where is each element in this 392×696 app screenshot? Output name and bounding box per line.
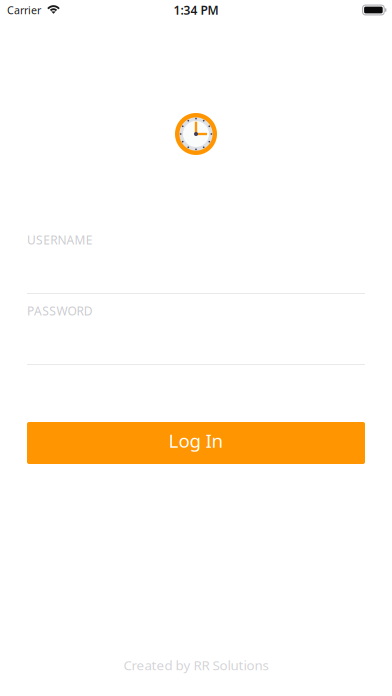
staticText: Created by RR Solutions: [123, 656, 268, 674]
staticText: USERNAME: [27, 232, 93, 248]
staticText: PASSWORD: [27, 303, 93, 319]
staticText: Log In: [168, 428, 223, 453]
button[interactable]: PASSWORD: [27, 303, 365, 365]
staticText: Carrier: [7, 3, 41, 17]
button[interactable]: USERNAME: [27, 232, 365, 294]
button[interactable]: Log In: [27, 422, 365, 464]
staticText: 1:34 PM: [173, 2, 218, 18]
